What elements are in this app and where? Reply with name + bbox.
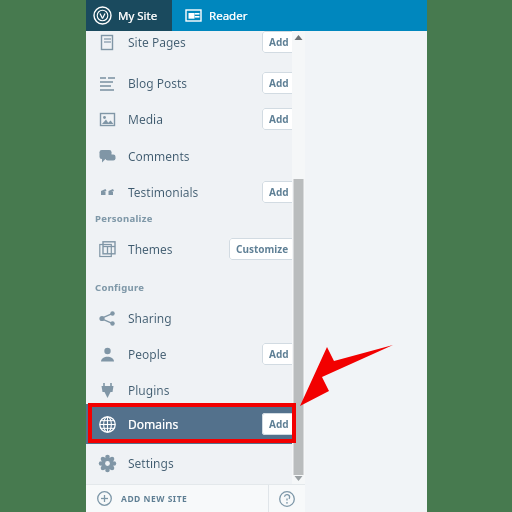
staticText: Add	[269, 417, 289, 431]
staticText: Add	[269, 35, 289, 49]
staticText: My Site	[118, 8, 158, 24]
button[interactable]: Comments	[86, 138, 305, 174]
staticText: Settings	[128, 455, 296, 471]
button[interactable]: Help	[269, 485, 305, 512]
staticText: ADD NEW SITE	[121, 493, 188, 505]
staticText: Add	[269, 185, 289, 199]
staticText: Themes	[128, 241, 229, 257]
button[interactable]: Add	[262, 413, 296, 435]
staticText: Plugins	[128, 382, 296, 398]
staticText: Testimonials	[128, 184, 262, 200]
button[interactable]: Add	[262, 31, 296, 53]
staticText: Reader	[209, 8, 248, 24]
button[interactable]: Reader	[172, 0, 248, 31]
staticText: Add	[269, 112, 289, 126]
button[interactable]: Themes	[86, 231, 305, 267]
staticText: Domains	[128, 416, 262, 432]
button[interactable]: People	[86, 336, 305, 372]
button[interactable]: Add	[262, 108, 296, 130]
button[interactable]: Customize	[229, 238, 296, 260]
staticText: People	[128, 346, 262, 362]
button[interactable]: ADD NEW SITE	[86, 485, 268, 512]
button[interactable]: Domains	[86, 404, 305, 444]
staticText: Blog Posts	[128, 75, 262, 91]
staticText: Add	[269, 76, 289, 90]
staticText: Configure	[95, 281, 145, 294]
staticText: Add	[269, 347, 289, 361]
button[interactable]: Settings	[86, 445, 305, 481]
button[interactable]: Add	[262, 343, 296, 365]
button[interactable]: Plugins	[86, 372, 305, 408]
button[interactable]: Add	[262, 181, 296, 203]
button[interactable]: My Site	[86, 0, 172, 31]
button[interactable]: Add	[262, 72, 296, 94]
button[interactable]: Sharing	[86, 300, 305, 336]
staticText: Media	[128, 111, 262, 127]
button[interactable]: Site Pages	[86, 25, 305, 59]
staticText: Site Pages	[128, 34, 262, 50]
staticText: Sharing	[128, 310, 296, 326]
staticText: Personalize	[95, 212, 153, 225]
button[interactable]: Blog Posts	[86, 65, 305, 101]
staticText: Customize	[236, 242, 289, 256]
staticText: Comments	[128, 148, 296, 164]
button[interactable]: Testimonials	[86, 174, 305, 210]
button[interactable]: Media	[86, 101, 305, 137]
